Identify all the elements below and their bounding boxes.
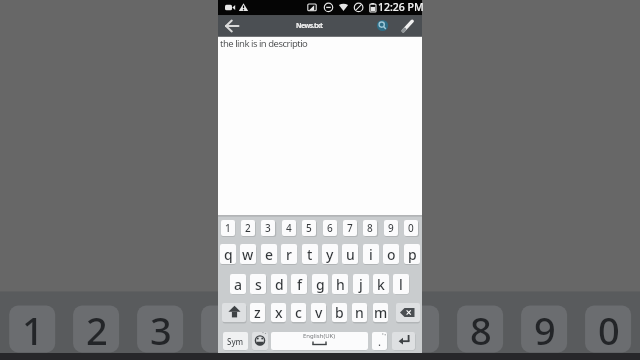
button[interactable]: x [271,303,286,322]
button[interactable]: r [281,244,297,264]
button[interactable]: u [342,244,358,264]
button[interactable]: 8 [363,220,377,236]
button[interactable]: h [332,274,348,294]
button[interactable]: w [240,244,256,264]
staticText: a [234,275,243,294]
staticText: j [359,275,363,294]
staticText: x [275,303,283,322]
staticText: 2 [86,304,108,356]
button[interactable]: o [383,244,399,264]
button[interactable]: n [352,303,367,322]
button[interactable] [222,303,246,322]
staticText: f [297,275,302,294]
staticText: k [377,275,385,294]
staticText: r [286,245,292,264]
button[interactable]: . [372,332,387,350]
staticText: g [316,275,325,294]
staticText: . [378,334,381,349]
button[interactable]: q [220,244,236,264]
staticText: 8 [367,221,373,235]
button[interactable]: l [393,274,409,294]
staticText: English(UK) [303,332,336,340]
staticText: h [336,275,345,294]
button[interactable]: j [353,274,369,294]
staticText: 12:26 PM [378,0,424,14]
staticText: Sym [227,336,244,347]
staticText: the link is in descriptio [220,37,308,50]
staticText: m [374,303,388,322]
staticText: c [295,303,302,322]
button[interactable]: e [261,244,277,264]
button[interactable] [371,15,393,37]
button[interactable]: c [291,303,306,322]
staticText: 1 [225,221,231,235]
button[interactable]: g [312,274,328,294]
button[interactable] [271,332,368,350]
staticText: i [369,245,373,264]
button[interactable] [396,303,420,322]
button[interactable]: f [291,274,307,294]
button[interactable]: 4 [282,220,296,236]
staticText: 6 [327,221,333,235]
button[interactable] [397,15,419,37]
button[interactable]: 2 [241,220,255,236]
button[interactable]: 0 [404,220,418,236]
staticText: n [355,303,364,322]
button[interactable]: t [302,244,318,264]
button[interactable]: 6 [323,220,337,236]
button[interactable]: m [373,303,388,322]
staticText: q [224,245,233,264]
staticText: y [326,245,334,264]
staticText: w [242,245,254,264]
staticText: 9 [388,221,394,235]
button[interactable]: Sym [223,332,248,350]
staticText: 4 [286,221,292,235]
button[interactable]: p [404,244,420,264]
staticText: e [265,245,274,264]
staticText: t [307,245,313,264]
staticText: News.txt [296,21,323,30]
staticText: o [387,245,396,264]
staticText: 1 [22,304,44,356]
button[interactable]: k [373,274,389,294]
staticText: u [346,245,355,264]
button[interactable]: z [250,303,265,322]
button[interactable]: s [250,274,266,294]
button[interactable]: y [322,244,338,264]
button[interactable]: 7 [343,220,357,236]
staticText: 3 [150,304,172,356]
staticText: d [275,275,284,294]
button[interactable]: 1 [221,220,235,236]
staticText: p [408,245,417,264]
staticText: 8 [470,304,492,356]
staticText: 5 [306,221,312,235]
staticText: 0 [598,304,620,356]
button[interactable]: b [332,303,347,322]
staticText: v [315,303,323,322]
button[interactable] [221,15,245,37]
button[interactable]: 3 [261,220,275,236]
button[interactable]: 5 [302,220,316,236]
button[interactable]: a [230,274,246,294]
staticText: b [335,303,344,322]
staticText: s [255,275,262,294]
button[interactable] [252,332,268,350]
staticText: 7 [347,221,353,235]
staticText: 3 [265,221,271,235]
staticText: 2 [245,221,251,235]
staticText: 9 [534,304,556,356]
staticText: z [254,303,261,322]
button[interactable]: i [363,244,379,264]
button[interactable]: 9 [384,220,398,236]
button[interactable] [392,332,415,350]
button[interactable]: v [311,303,326,322]
staticText: 0 [408,221,414,235]
button[interactable]: d [271,274,287,294]
staticText: l [399,275,403,294]
